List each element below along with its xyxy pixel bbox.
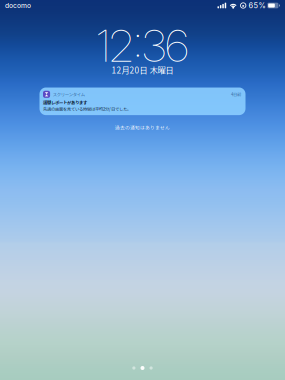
staticText: スクリーンタイム bbox=[53, 91, 85, 97]
staticText: 先週の画面を見ている時間は平均2分/日でした。 bbox=[43, 106, 131, 112]
button[interactable]: スクリーンタイム bbox=[39, 87, 245, 115]
staticText: 12:36 bbox=[96, 19, 188, 72]
staticText: 4日前 bbox=[231, 91, 241, 97]
staticText: 過去の通知はありません bbox=[115, 124, 170, 131]
staticText: docomo bbox=[5, 1, 31, 10]
staticText: 12月20日 木曜日 bbox=[111, 64, 173, 76]
staticText: 週間レポートがあります bbox=[43, 99, 87, 106]
staticText: 65% bbox=[248, 1, 265, 10]
